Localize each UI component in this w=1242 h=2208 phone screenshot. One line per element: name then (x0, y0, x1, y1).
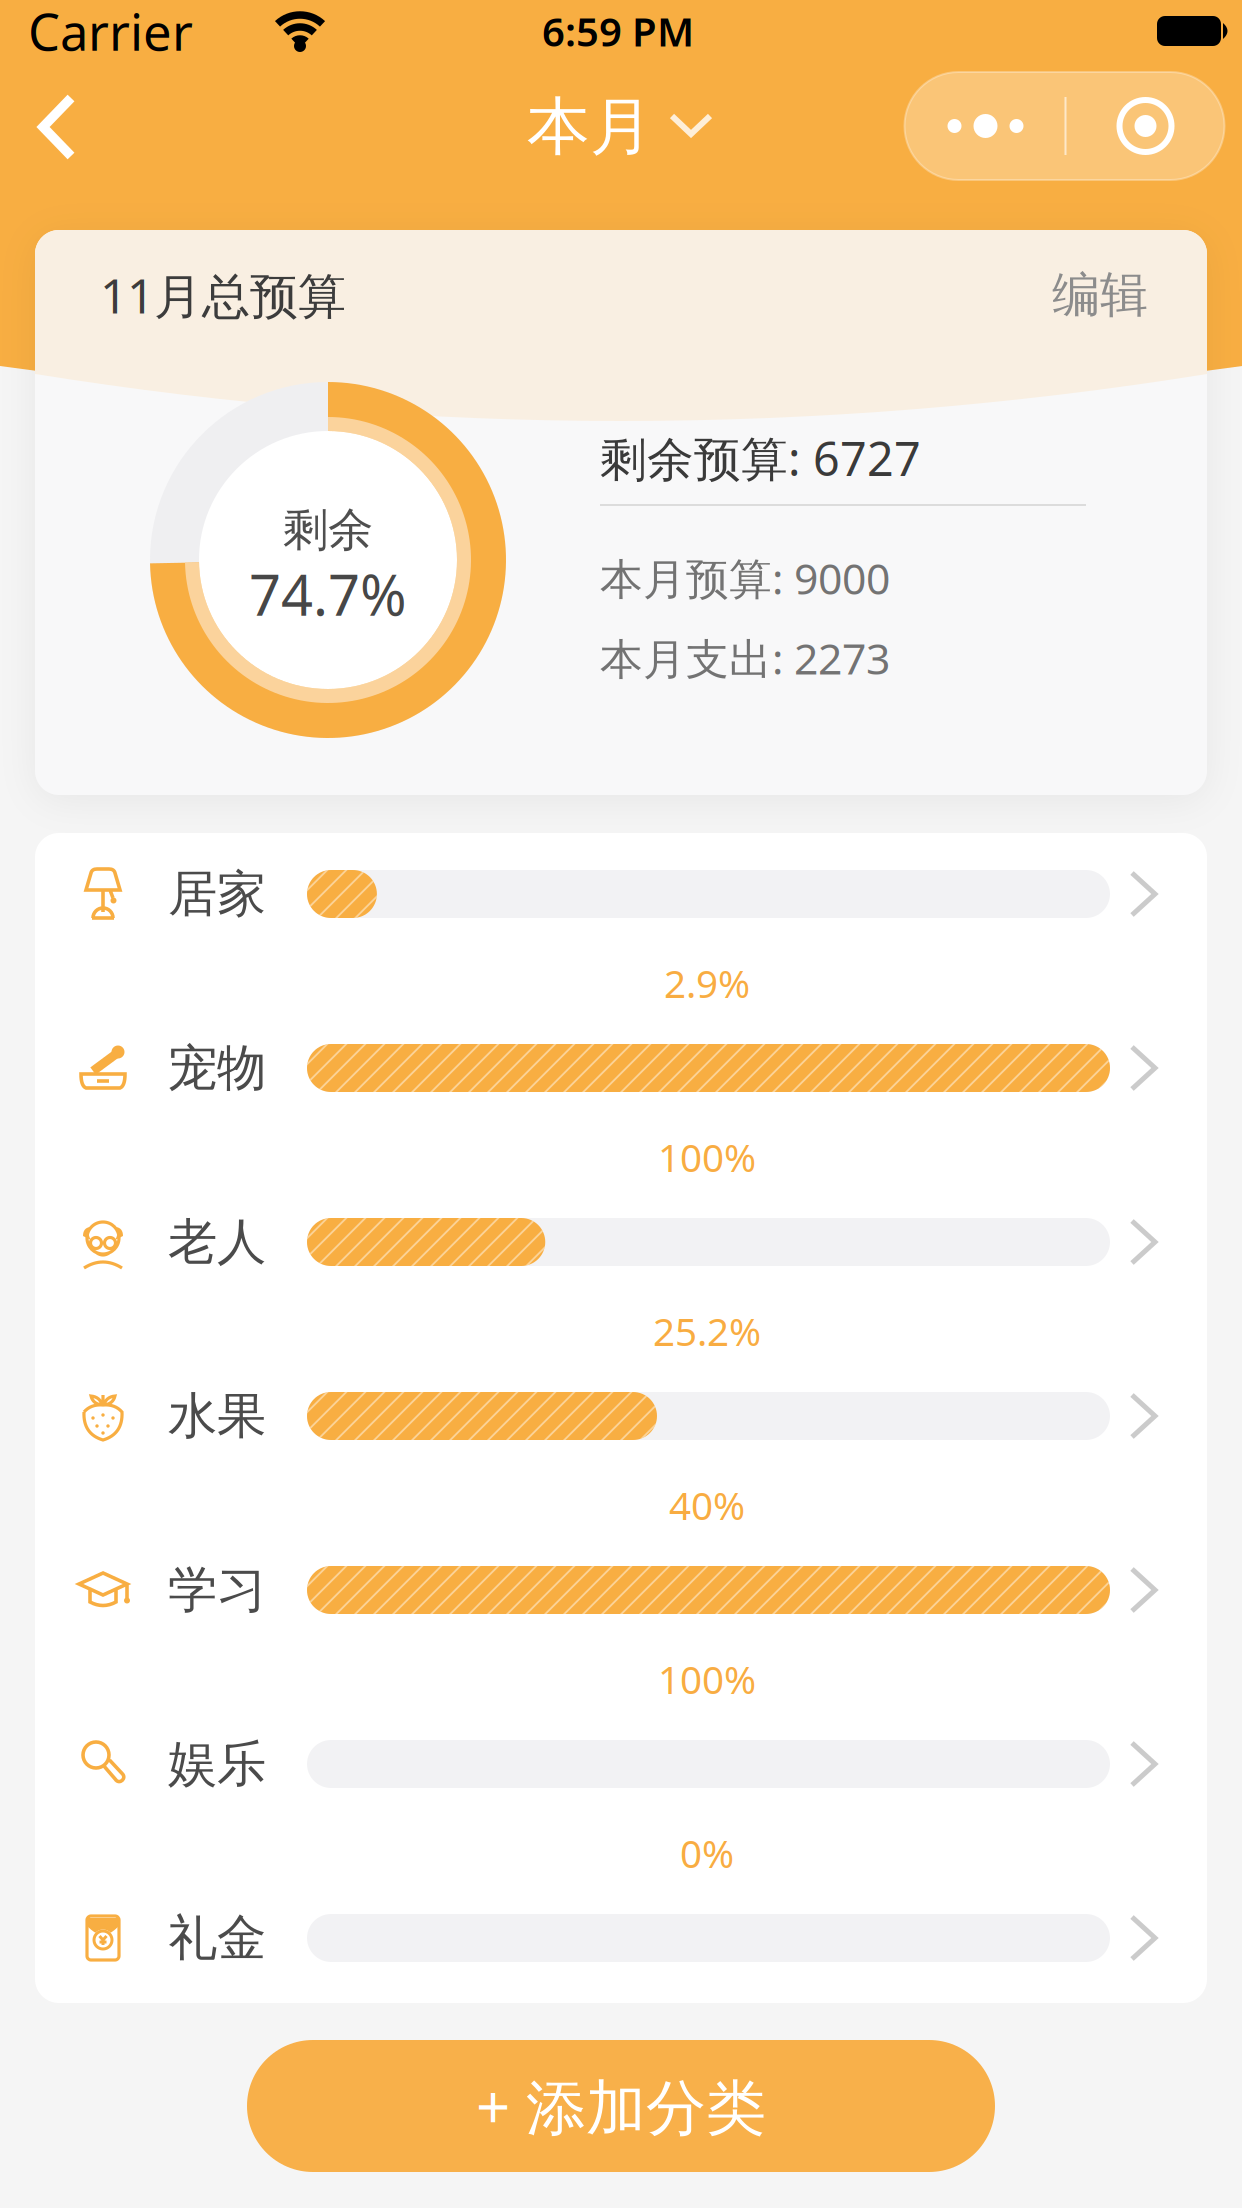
staticText: Carrier (28, 0, 193, 65)
staticText: 25.2% (653, 1305, 761, 1357)
staticText: 40% (669, 1479, 745, 1531)
staticText: 100% (658, 1653, 756, 1705)
button[interactable]: 水果 (35, 1363, 1207, 1537)
staticText: 学习 (168, 1560, 266, 1620)
staticText: 剩余 (283, 502, 373, 558)
staticText: + 添加分类 (476, 2066, 766, 2146)
button[interactable]: 居家 (35, 841, 1207, 1015)
button[interactable]: More (904, 72, 1064, 180)
button[interactable]: 娱乐 (35, 1711, 1207, 1885)
staticText: 本月预算: 9000 (600, 550, 890, 606)
staticText: 剩余预算: 6727 (600, 427, 921, 489)
button[interactable]: + 添加分类 (247, 2040, 995, 2172)
button[interactable]: 编辑 (0, 0, 1242, 2208)
button[interactable]: 老人 (35, 1189, 1207, 1363)
staticText: 11月总预算 (100, 263, 346, 327)
staticText: 0% (680, 1827, 734, 1879)
staticText: 居家 (168, 864, 266, 924)
button[interactable]: Close (1065, 72, 1224, 180)
staticText: 宠物 (168, 1038, 266, 1098)
staticText: 6:59 PM (542, 4, 694, 57)
button[interactable]: 本月 (510, 89, 730, 165)
staticText: 老人 (168, 1212, 266, 1272)
staticText: 礼金 (168, 1908, 266, 1968)
button[interactable]: Back (0, 89, 100, 165)
staticText: 本月支出: 2273 (600, 630, 890, 686)
staticText: 本月 (527, 88, 653, 165)
staticText: 水果 (168, 1386, 266, 1446)
staticText: 娱乐 (168, 1734, 266, 1794)
staticText: 100% (658, 1131, 756, 1183)
button[interactable]: 礼金 (35, 1885, 1207, 2059)
staticText: 74.7% (249, 557, 407, 631)
staticText: 2.9% (664, 957, 750, 1009)
staticText: 编辑 (1052, 265, 1148, 324)
button[interactable]: 学习 (35, 1537, 1207, 1711)
button[interactable]: 宠物 (35, 1015, 1207, 1189)
